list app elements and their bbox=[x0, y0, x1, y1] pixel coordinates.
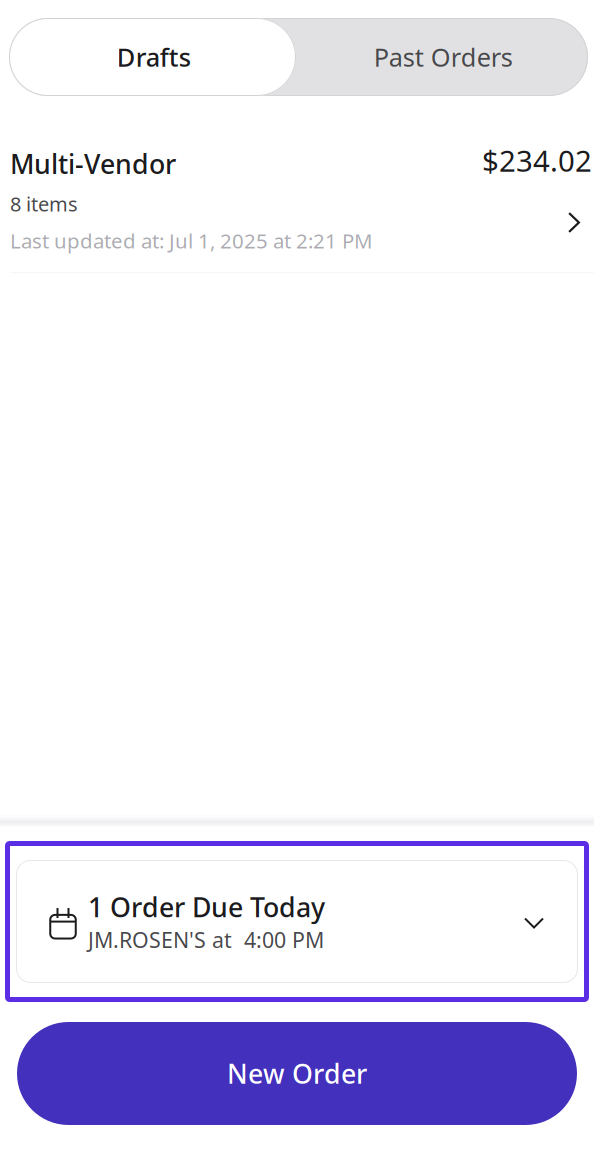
staticText: Drafts bbox=[117, 40, 191, 74]
staticText: Last updated at: Jul 1, 2025 at 2:21 PM bbox=[10, 227, 373, 254]
button[interactable]: Drafts bbox=[9, 18, 298, 96]
staticText: 1 Order Due Today bbox=[88, 889, 325, 924]
staticText: Past Orders bbox=[374, 40, 513, 74]
staticText: Multi-Vendor bbox=[10, 146, 176, 181]
button[interactable]: New Order bbox=[17, 1022, 577, 1125]
button[interactable]: 1 Order Due Today bbox=[5, 841, 589, 1002]
button[interactable]: Multi-Vendor bbox=[0, 146, 594, 254]
staticText: 8 items bbox=[10, 190, 78, 217]
button[interactable]: Past Orders bbox=[298, 18, 588, 96]
staticText: $234.02 bbox=[482, 141, 592, 180]
staticText: JM.ROSEN'S at 4:00 PM bbox=[88, 925, 324, 954]
staticText: New Order bbox=[227, 1056, 367, 1091]
